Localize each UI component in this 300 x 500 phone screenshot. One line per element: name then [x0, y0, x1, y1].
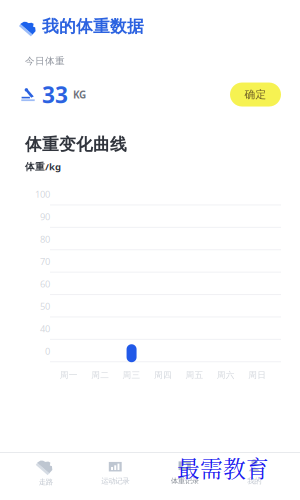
- staticText: 周四: [154, 370, 172, 381]
- button[interactable]: 走路: [11, 453, 80, 491]
- staticText: 我的: [247, 476, 261, 486]
- staticText: 80: [40, 233, 50, 245]
- staticText: 周六: [217, 370, 235, 381]
- staticText: 90: [40, 210, 50, 223]
- staticText: 周日: [248, 370, 266, 381]
- button[interactable]: 我的: [219, 453, 289, 491]
- staticText: 体重/kg: [25, 160, 61, 173]
- staticText: 周三: [123, 370, 141, 381]
- staticText: 50: [40, 300, 50, 313]
- staticText: 33: [42, 79, 68, 110]
- staticText: 走路: [39, 477, 53, 487]
- staticText: 体重变化曲线: [25, 134, 127, 155]
- button[interactable]: 体重记录: [150, 453, 219, 491]
- staticText: 0: [45, 345, 50, 357]
- staticText: 今日体重: [25, 55, 65, 67]
- staticText: 最需教育: [177, 451, 269, 484]
- staticText: 100: [35, 188, 50, 201]
- staticText: 我的体重数据: [42, 16, 144, 37]
- staticText: 周一: [60, 370, 78, 381]
- staticText: 周五: [185, 370, 203, 381]
- staticText: 体重记录: [171, 476, 199, 486]
- staticText: 确定: [244, 88, 266, 101]
- staticText: 70: [40, 255, 50, 268]
- staticText: 40: [40, 322, 50, 335]
- staticText: 运动记录: [101, 476, 129, 486]
- button[interactable]: 确定: [230, 82, 281, 106]
- button[interactable]: 运动记录: [80, 453, 150, 491]
- staticText: 周二: [91, 370, 109, 381]
- staticText: KG: [73, 88, 86, 101]
- staticText: 60: [40, 277, 50, 290]
